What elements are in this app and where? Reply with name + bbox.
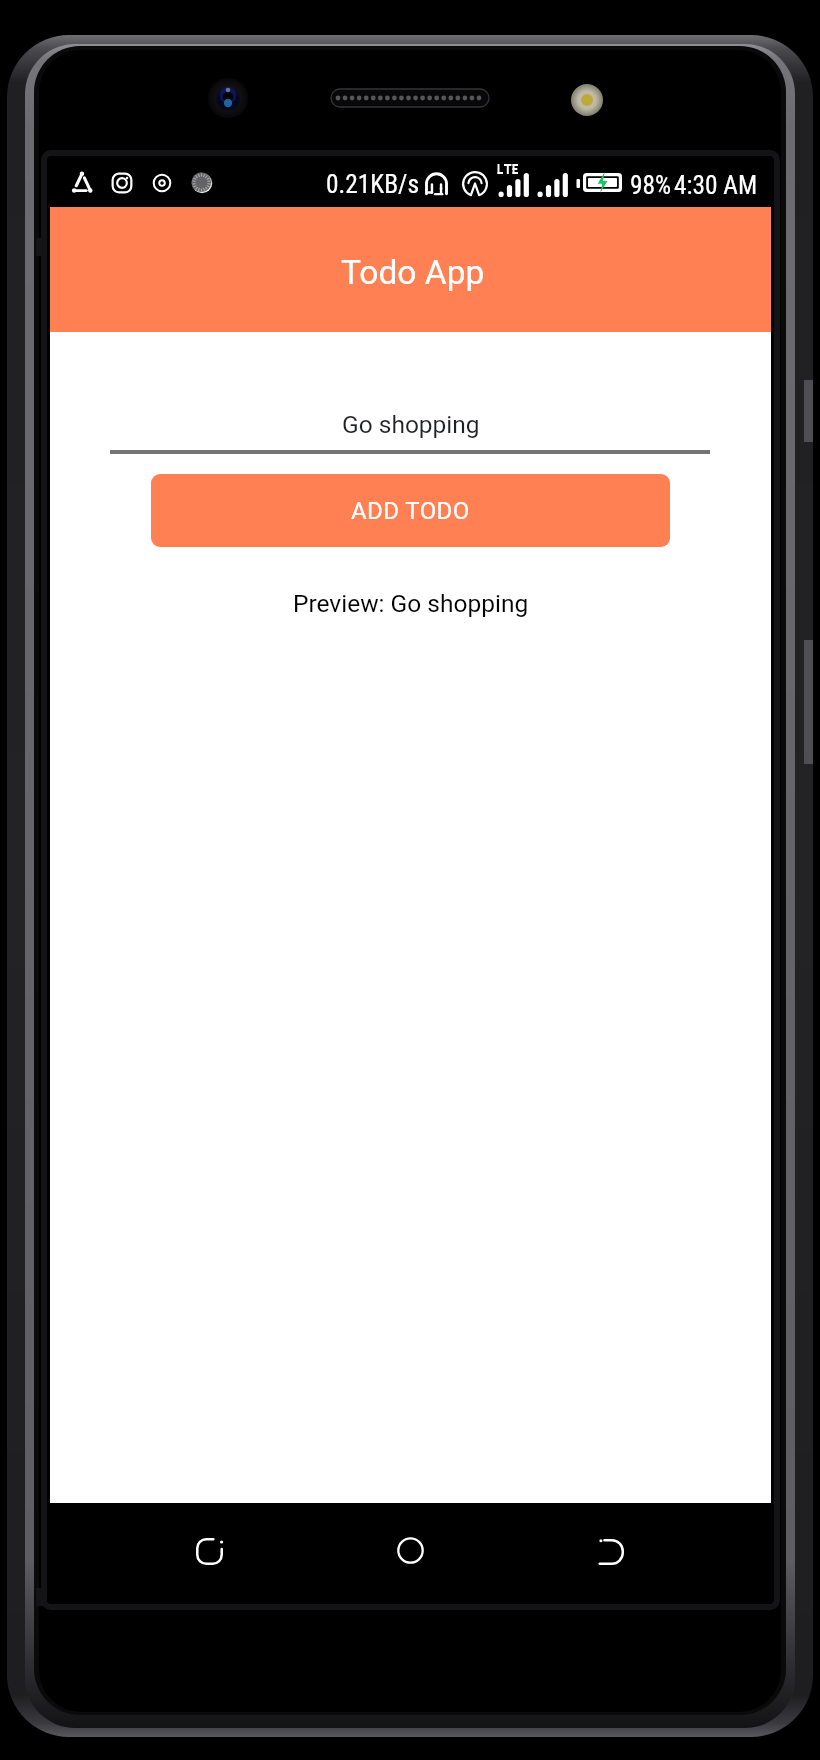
button[interactable]: Back (561, 1503, 661, 1601)
button[interactable]: Recent apps (160, 1502, 260, 1600)
staticText: 0.21KB/s (326, 169, 420, 199)
staticText: 98% (630, 170, 672, 200)
staticText: ADD TODO (351, 497, 470, 525)
staticText: 4:30 AM (674, 170, 758, 200)
button[interactable]: ADD TODO (151, 474, 670, 547)
staticText: Go shopping (342, 410, 480, 439)
staticText: Preview: Go shopping (293, 589, 529, 618)
staticText: Todo App (341, 253, 485, 292)
button[interactable]: Home (360, 1501, 460, 1599)
